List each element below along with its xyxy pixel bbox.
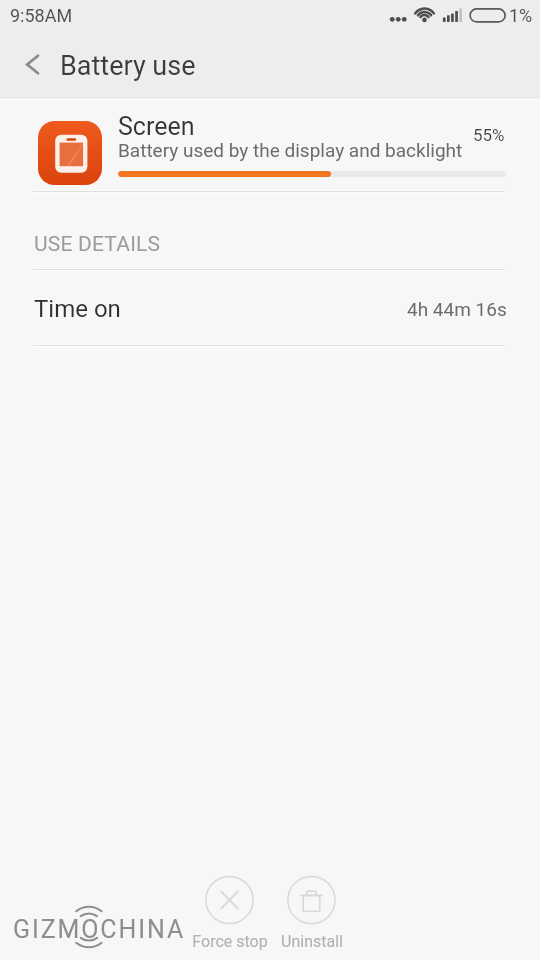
- button[interactable]: [0, 270, 540, 345]
- staticText: 9:58AM: [10, 5, 73, 26]
- staticText: 1%: [509, 5, 533, 26]
- staticText: Battery used by the display and backligh…: [118, 139, 463, 161]
- button[interactable]: Back: [0, 31, 56, 98]
- staticText: USE DETAILS: [34, 232, 161, 257]
- staticText: Battery use: [60, 50, 196, 82]
- staticText: Uninstall: [262, 932, 362, 951]
- staticText: Screen: [118, 112, 195, 141]
- button[interactable]: [272, 872, 350, 954]
- staticText: Time on: [34, 295, 121, 323]
- button[interactable]: [0, 98, 540, 192]
- staticText: Force stop: [180, 932, 280, 951]
- staticText: 4h 44m 16s: [407, 298, 507, 320]
- staticText: GIZMOCHINA: [13, 915, 186, 944]
- staticText: 55%: [473, 125, 505, 145]
- button[interactable]: [190, 872, 268, 954]
